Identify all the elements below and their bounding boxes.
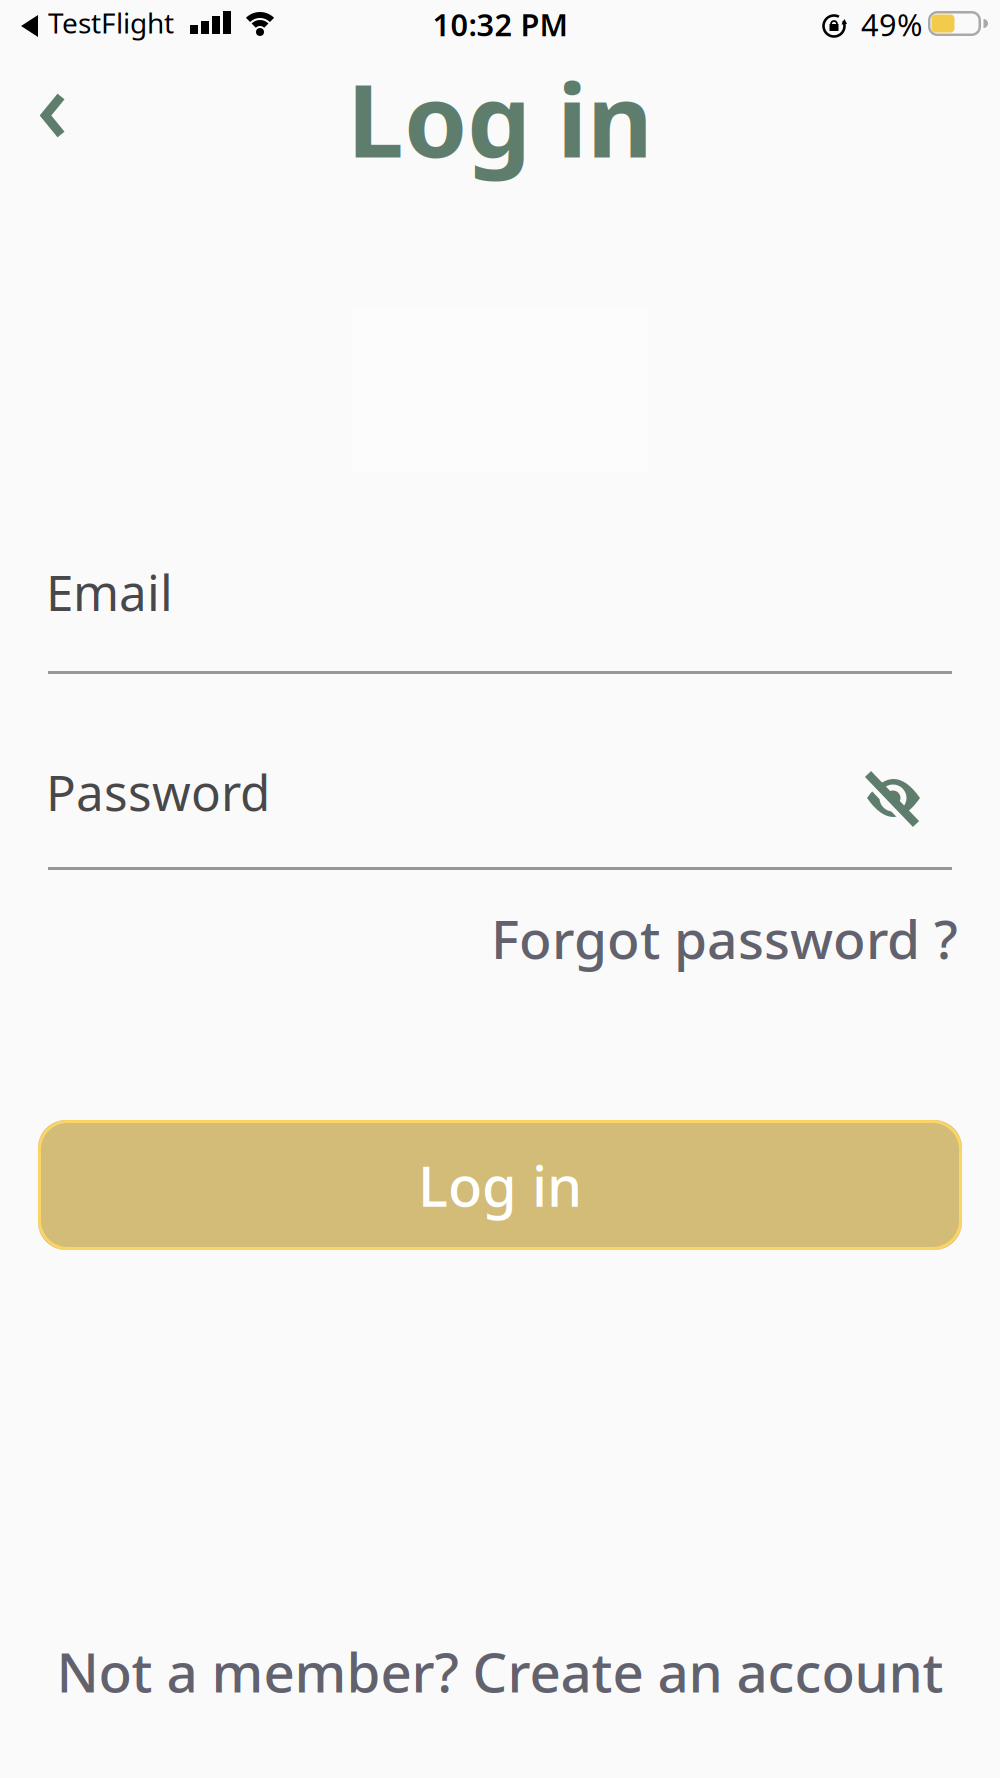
staticText: TestFlight: [48, 4, 174, 41]
button[interactable]: Log in: [38, 1120, 962, 1250]
staticText: Log in: [418, 1148, 582, 1222]
button[interactable]: Not a member? Create an account: [56, 1635, 943, 1708]
staticText: 49%: [861, 4, 922, 45]
button[interactable]: Back: [22, 80, 92, 150]
staticText: Not a member? Create an account: [56, 1635, 943, 1708]
staticText: 10:32 PM: [432, 4, 567, 45]
staticText: Forgot password ?: [491, 903, 958, 974]
button[interactable]: Show password: [861, 764, 925, 828]
staticText: Email: [46, 559, 173, 624]
staticText: Log in: [347, 51, 653, 186]
button[interactable]: Forgot password ?: [491, 903, 958, 974]
staticText: Password: [46, 759, 270, 824]
